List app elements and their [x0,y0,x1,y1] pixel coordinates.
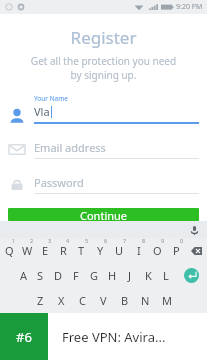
staticText: L [163,268,169,283]
button[interactable]: Backspace [186,238,207,263]
staticText: 5 [85,237,89,244]
staticText: K [145,268,152,283]
button[interactable]: Email address [0,137,207,159]
staticText: Get all the protection you need by signi… [0,54,207,82]
button[interactable]: Continue [8,208,199,221]
staticText: Q [5,243,14,258]
staticText: Z [37,293,44,308]
staticText: 2 [30,237,34,244]
staticText: 6 [104,237,108,244]
staticText: Vla [34,104,50,119]
staticText: U [115,243,124,258]
staticText: H [108,268,117,283]
staticText: 4 [66,237,70,244]
staticText: S [37,268,44,283]
button[interactable]: X [51,288,72,313]
staticText: W [22,243,33,258]
button[interactable]: M [156,288,177,313]
staticText: Email address [34,140,106,155]
button[interactable]: Z [30,288,51,313]
staticText: #6 [16,328,32,346]
staticText: Password [34,175,84,190]
button[interactable]: P [167,238,186,263]
button[interactable]: O [148,238,167,263]
staticText: 8 [142,237,146,244]
button[interactable]: Your Name [0,94,207,124]
button[interactable]: Voice input [187,223,201,237]
staticText: Continue [80,208,128,221]
button[interactable]: C [72,288,93,313]
staticText: Y [97,243,104,258]
staticText: 9:20 PM [176,2,203,12]
button[interactable]: H [103,263,121,288]
button[interactable]: L [157,263,175,288]
staticText: A [20,268,28,283]
staticText: D [54,268,63,283]
button[interactable]: D [49,263,67,288]
staticText: I [137,243,141,258]
staticText: 0 [180,237,184,244]
button[interactable]: Password [0,172,207,194]
staticText: N [141,293,150,308]
staticText: B [121,293,129,308]
staticText: 3 [48,237,52,244]
button[interactable]: Q [0,238,18,263]
button[interactable]: U [110,238,129,263]
staticText: Register [0,26,207,49]
button[interactable]: R [54,238,72,263]
button[interactable]: F [67,263,85,288]
staticText: C [79,293,86,308]
staticText: O [153,243,162,258]
staticText: Free VPN: Avira... [62,328,166,346]
staticText: F [73,268,79,283]
button[interactable]: Y [91,238,110,263]
button[interactable]: B [114,288,135,313]
staticText: M [162,293,172,308]
staticText: G [90,268,99,283]
button[interactable]: I [129,238,148,263]
staticText: T [78,243,85,258]
button[interactable]: W [18,238,36,263]
staticText: V [100,293,107,308]
staticText: 9 [161,237,165,244]
staticText: R [60,243,67,258]
button[interactable]: G [85,263,103,288]
button[interactable]: N [135,288,156,313]
button[interactable]: J [121,263,139,288]
button[interactable]: A [15,263,32,288]
staticText: Your Name [34,94,69,103]
button[interactable]: #6 [0,313,207,360]
button[interactable]: Enter [184,268,199,283]
staticText: P [173,243,180,258]
staticText: J [128,268,132,283]
staticText: E [42,243,49,258]
button[interactable]: T [72,238,91,263]
button[interactable]: E [36,238,54,263]
button[interactable]: K [139,263,157,288]
staticText: X [58,293,65,308]
button[interactable]: S [32,263,49,288]
staticText: 7 [123,237,127,244]
button[interactable]: V [93,288,114,313]
staticText: 1 [12,237,16,244]
